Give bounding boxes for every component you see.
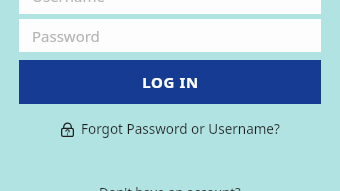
button[interactable]: LOG IN <box>19 60 321 104</box>
button[interactable]: Don't have an account? <box>0 183 340 191</box>
staticText: Don't have an account? <box>99 183 241 191</box>
staticText: Forgot Password or Username? <box>81 120 280 138</box>
other: Forgot password <box>60 122 75 137</box>
button[interactable]: Forgot password <box>0 118 340 140</box>
button[interactable]: Username <box>19 0 321 14</box>
staticText: Username <box>32 0 105 6</box>
button[interactable]: Password <box>19 19 321 52</box>
staticText: LOG IN <box>142 72 199 92</box>
staticText: Password <box>32 26 100 46</box>
